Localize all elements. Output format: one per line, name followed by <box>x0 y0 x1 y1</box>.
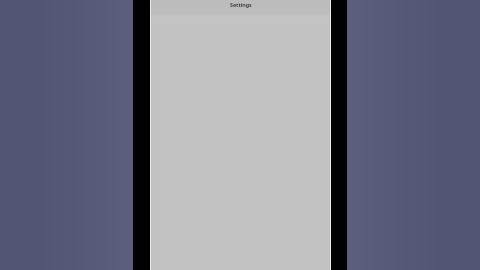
button[interactable]: Settings <box>150 0 331 14</box>
staticText: Settings <box>230 1 252 8</box>
